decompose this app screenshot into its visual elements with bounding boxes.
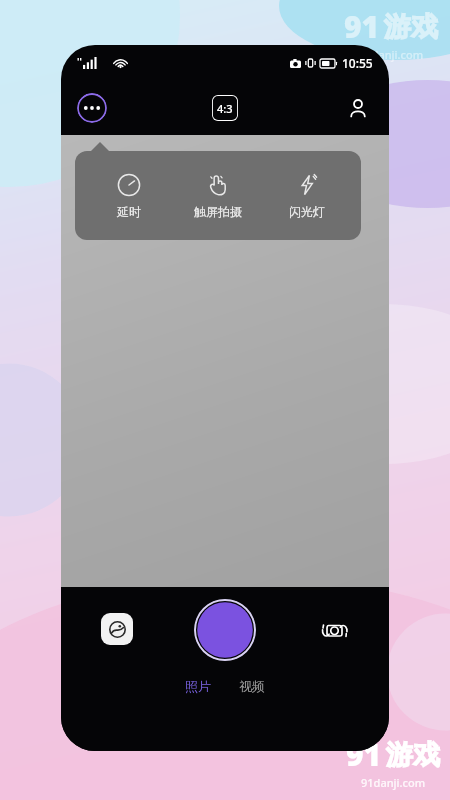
button[interactable]: Switch camera xyxy=(317,613,351,647)
button[interactable]: 闪光灯 xyxy=(266,167,348,225)
button[interactable]: More settings xyxy=(77,93,107,123)
staticText: 91 xyxy=(344,6,380,47)
staticText: 闪光灯 xyxy=(289,204,325,219)
staticText: 游戏 xyxy=(384,10,438,44)
button[interactable]: 视频 xyxy=(231,675,273,697)
staticText: 照片 xyxy=(185,678,211,694)
button[interactable]: Shutter xyxy=(194,599,256,661)
staticText: 91danji.com xyxy=(361,775,426,790)
staticText: 4:3 xyxy=(217,101,233,116)
button[interactable]: 延时 xyxy=(88,167,170,225)
staticText: 触屏拍摄 xyxy=(194,204,242,219)
staticText: 视频 xyxy=(239,678,265,694)
button[interactable]: 照片 xyxy=(177,675,219,697)
button[interactable]: 触屏拍摄 xyxy=(177,167,259,225)
staticText: 91danji.com xyxy=(359,47,424,62)
staticText: 游戏 xyxy=(386,738,440,772)
staticText: 延时 xyxy=(117,204,141,219)
staticText: 10:55 xyxy=(342,55,373,71)
button[interactable]: Profile xyxy=(343,93,373,123)
button[interactable]: Gallery xyxy=(101,613,133,645)
button[interactable]: 4:3 xyxy=(212,95,238,121)
staticText: 91 xyxy=(346,734,382,775)
